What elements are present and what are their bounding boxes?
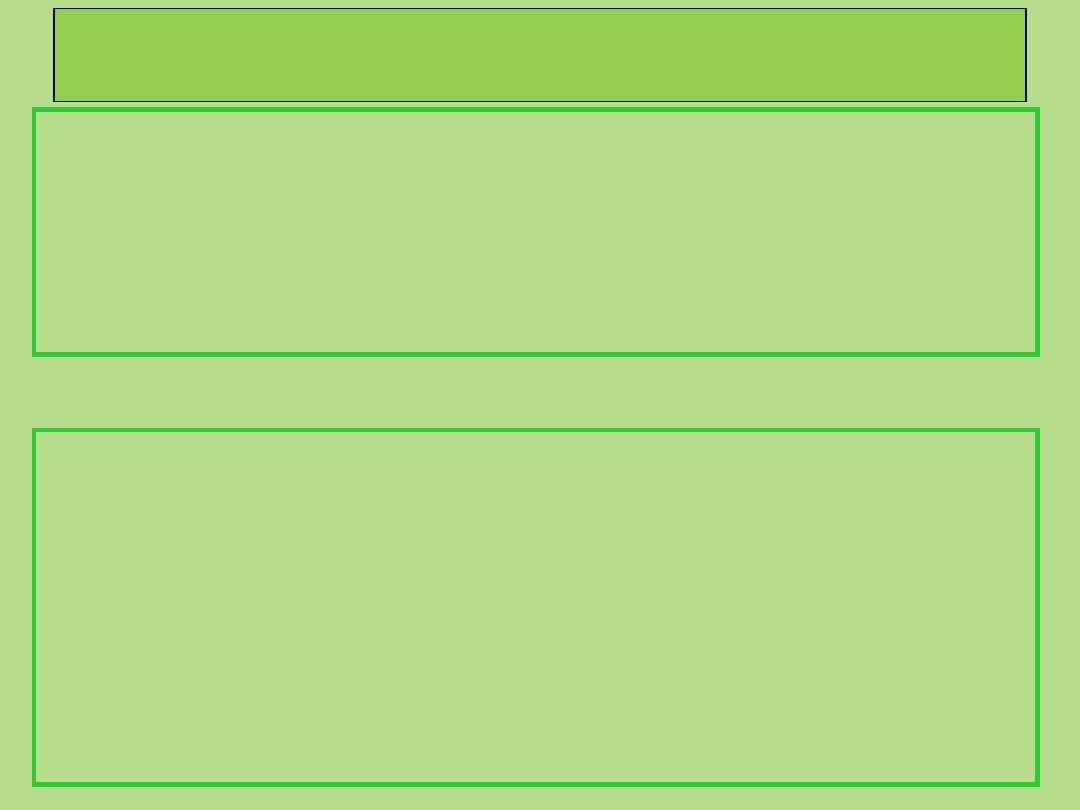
button[interactable]: Second content card [32,428,1040,787]
button[interactable]: Top app bar [53,8,1027,102]
button[interactable]: First content card [32,107,1040,357]
